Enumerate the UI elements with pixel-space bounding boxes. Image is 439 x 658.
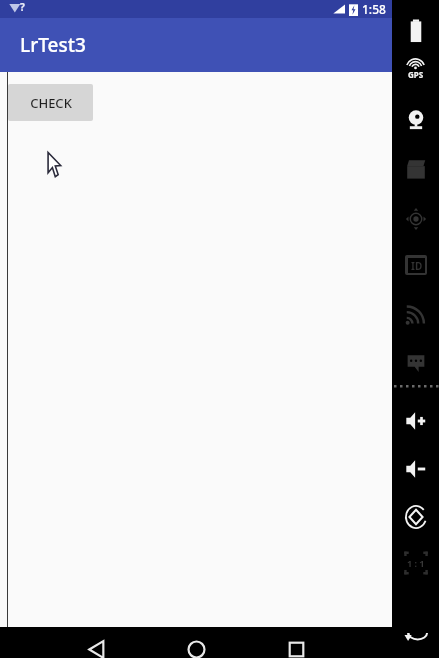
button[interactable]: Record screen: [392, 152, 439, 186]
button[interactable]: D-pad: [392, 202, 439, 236]
button[interactable]: Back: [396, 618, 436, 648]
staticText: GPS: [408, 69, 424, 80]
button[interactable]: Volume up: [392, 404, 439, 438]
button[interactable]: Camera: [392, 103, 439, 137]
button[interactable]: Messages: [392, 345, 439, 379]
staticText: 1 : 1: [407, 557, 425, 569]
button[interactable]: Cellular: [392, 297, 439, 331]
button[interactable]: Home: [172, 627, 220, 658]
staticText: CHECK: [30, 94, 72, 112]
button[interactable]: Zoom 1:1: [392, 546, 439, 580]
button[interactable]: Battery: [392, 14, 439, 48]
button[interactable]: CHECK: [8, 84, 93, 121]
staticText: ID: [411, 259, 423, 273]
button[interactable]: Phone ID: [392, 248, 439, 282]
button[interactable]: Volume down: [392, 452, 439, 486]
staticText: 1:58: [362, 1, 386, 17]
staticText: ?: [20, 0, 25, 14]
button[interactable]: Recent apps: [272, 627, 320, 658]
staticText: LrTest3: [20, 32, 86, 58]
button[interactable]: GPS: [392, 52, 439, 86]
button[interactable]: Rotate: [392, 500, 439, 534]
button[interactable]: Back: [72, 627, 120, 658]
